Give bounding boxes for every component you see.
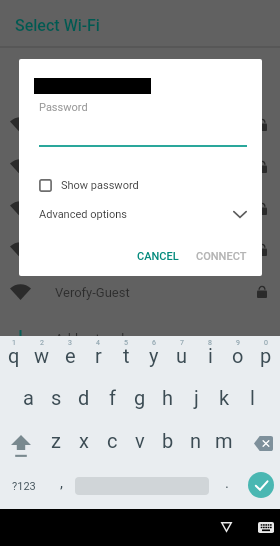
- staticText: 3: [68, 339, 72, 347]
- staticText: a: [23, 386, 34, 409]
- button[interactable]: Space: [75, 465, 209, 509]
- button[interactable]: 7: [168, 336, 196, 379]
- button[interactable]: TP-Link-5G: [0, 188, 280, 230]
- button[interactable]: CONNECT: [188, 241, 255, 271]
- button[interactable]: c: [98, 422, 126, 465]
- button[interactable]: l: [238, 379, 266, 422]
- staticText: u: [176, 344, 188, 367]
- button[interactable]: d: [70, 379, 98, 422]
- button[interactable]: z: [42, 422, 70, 465]
- staticText: ?123: [12, 480, 36, 493]
- button[interactable]: v: [126, 422, 154, 465]
- staticText: m: [215, 429, 233, 452]
- staticText: y: [149, 344, 159, 367]
- staticText: Password: [39, 101, 88, 114]
- staticText: f: [109, 386, 116, 409]
- staticText: Add network: [55, 331, 128, 346]
- staticText: l: [250, 386, 255, 409]
- button[interactable]: x: [70, 422, 98, 465]
- staticText: r: [95, 344, 102, 367]
- staticText: k: [219, 386, 230, 409]
- staticText: d: [78, 386, 90, 409]
- button[interactable]: Verofy-Net: [0, 146, 280, 188]
- staticText: e: [65, 344, 76, 367]
- button[interactable]: 4: [84, 336, 112, 379]
- button[interactable]: Add network: [0, 317, 280, 359]
- staticText: 0: [264, 339, 268, 347]
- staticText: Verofy-Guest: [55, 285, 130, 300]
- button[interactable]: Show password: [19, 174, 149, 196]
- button[interactable]: k: [210, 379, 238, 422]
- staticText: 6: [152, 339, 156, 347]
- staticText: z: [51, 429, 61, 452]
- button[interactable]: a: [14, 379, 42, 422]
- button[interactable]: 8: [196, 336, 224, 379]
- staticText: s: [51, 386, 62, 409]
- button[interactable]: m: [210, 422, 238, 465]
- button[interactable]: h: [154, 379, 182, 422]
- button[interactable]: ,: [46, 465, 75, 509]
- button[interactable]: Shift: [0, 422, 42, 465]
- button[interactable]: ?123: [0, 465, 46, 509]
- staticText: 8: [208, 339, 212, 347]
- button[interactable]: Back: [212, 513, 240, 541]
- button[interactable]: 1: [0, 336, 28, 379]
- staticText: g: [134, 386, 146, 409]
- staticText: 5: [124, 339, 128, 347]
- staticText: n: [190, 429, 202, 452]
- staticText: q: [8, 344, 20, 367]
- button[interactable]: HomeNet: [0, 229, 280, 271]
- staticText: p: [260, 344, 272, 367]
- button[interactable]: g: [126, 379, 154, 422]
- button[interactable]: Verofy-Guest: [0, 271, 280, 313]
- button[interactable]: 9: [224, 336, 252, 379]
- button[interactable]: 5: [112, 336, 140, 379]
- button[interactable]: Advanced options: [19, 203, 262, 225]
- button[interactable]: Enter: [243, 465, 280, 509]
- button[interactable]: s: [42, 379, 70, 422]
- staticText: h: [162, 386, 174, 409]
- staticText: v: [135, 429, 145, 452]
- button[interactable]: f: [98, 379, 126, 422]
- staticText: o: [232, 344, 244, 367]
- staticText: x: [79, 429, 89, 452]
- button[interactable]: Verofy-Corp: [0, 104, 280, 146]
- button[interactable]: 0: [252, 336, 280, 379]
- staticText: Advanced options: [39, 208, 127, 221]
- staticText: 2: [40, 339, 44, 347]
- staticText: c: [107, 429, 118, 452]
- button[interactable]: j: [182, 379, 210, 422]
- staticText: t: [123, 344, 130, 367]
- staticText: Show password: [61, 179, 139, 192]
- staticText: 4: [96, 339, 100, 347]
- staticText: j: [194, 386, 199, 409]
- staticText: 9: [236, 339, 240, 347]
- staticText: ,: [60, 474, 63, 492]
- button[interactable]: 6: [140, 336, 168, 379]
- button[interactable]: b: [154, 422, 182, 465]
- staticText: CANCEL: [137, 250, 179, 263]
- button[interactable]: 2: [28, 336, 56, 379]
- button[interactable]: Backspace: [238, 422, 280, 465]
- staticText: b: [162, 429, 174, 452]
- button[interactable]: CANCEL: [129, 241, 187, 271]
- button[interactable]: Switch keyboard: [252, 513, 280, 541]
- staticText: w: [34, 344, 50, 367]
- staticText: .: [225, 474, 229, 492]
- button[interactable]: .: [209, 465, 243, 509]
- button[interactable]: 3: [56, 336, 84, 379]
- staticText: CONNECT: [196, 250, 247, 263]
- staticText: Select Wi-Fi: [15, 16, 100, 35]
- staticText: 1: [12, 339, 16, 347]
- staticText: i: [208, 344, 213, 367]
- staticText: 7: [180, 339, 184, 347]
- button[interactable]: n: [182, 422, 210, 465]
- staticText: TP-Link-5G: [55, 202, 119, 217]
